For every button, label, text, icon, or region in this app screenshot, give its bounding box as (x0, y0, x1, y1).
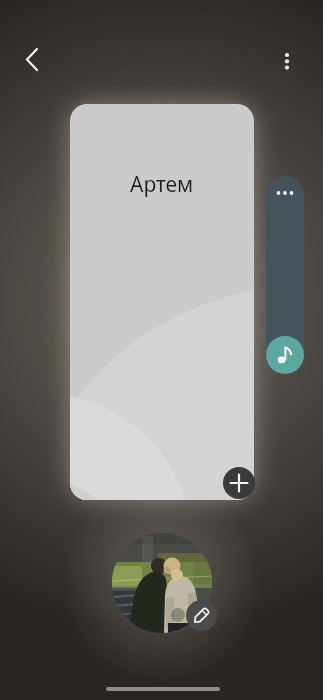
button[interactable] (186, 600, 217, 631)
button[interactable]: Артем (70, 104, 254, 500)
button[interactable] (112, 533, 212, 633)
button[interactable] (268, 42, 306, 80)
button[interactable] (14, 40, 52, 78)
staticText: Артем (130, 170, 194, 199)
button[interactable] (266, 176, 304, 368)
button[interactable] (223, 467, 255, 499)
button[interactable] (266, 336, 304, 374)
